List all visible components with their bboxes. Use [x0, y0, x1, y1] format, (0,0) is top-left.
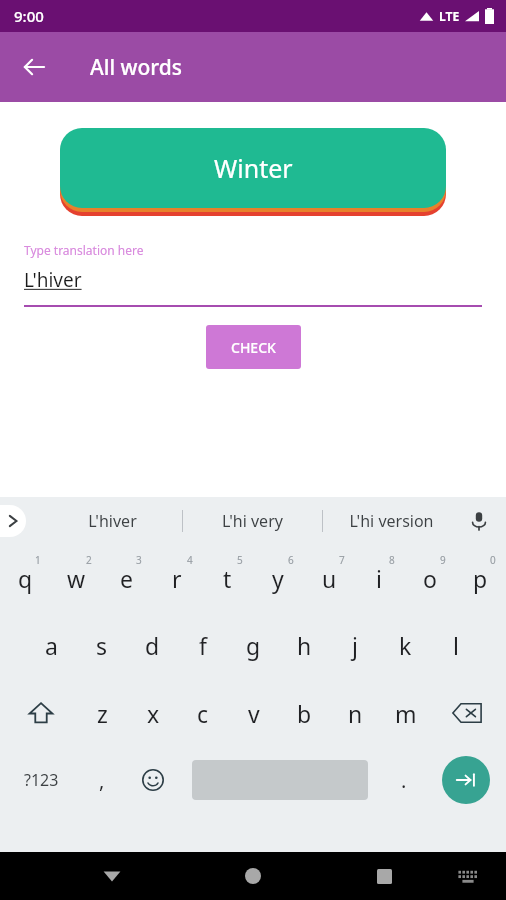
button[interactable]: g — [228, 611, 278, 679]
staticText: a — [45, 630, 58, 661]
button[interactable]: , — [80, 747, 124, 813]
staticText: t — [223, 563, 232, 594]
button[interactable]: Back — [88, 852, 136, 900]
staticText: v — [248, 698, 260, 729]
button[interactable]: s — [77, 611, 127, 679]
button[interactable]: l — [431, 611, 481, 679]
button[interactable]: L'hi version — [331, 497, 451, 545]
button[interactable]: Backspace — [440, 679, 494, 747]
button[interactable]: y — [253, 545, 303, 611]
staticText: c — [197, 698, 209, 729]
staticText: CHECK — [231, 338, 276, 357]
button[interactable]: Voice input — [462, 504, 496, 538]
staticText: All words — [90, 53, 183, 82]
button[interactable]: ?123 — [8, 747, 74, 813]
button[interactable]: e — [101, 545, 151, 611]
button[interactable]: r — [152, 545, 202, 611]
button[interactable]: a — [26, 611, 76, 679]
staticText: ?123 — [24, 769, 59, 791]
staticText: z — [97, 698, 108, 729]
button[interactable]: c — [178, 679, 228, 747]
staticText: L'hi version — [349, 510, 434, 532]
staticText: g — [246, 630, 261, 661]
staticText: LTE — [439, 8, 460, 24]
staticText: k — [399, 630, 412, 661]
staticText: . — [401, 767, 407, 794]
staticText: j — [352, 630, 358, 661]
staticText: 6 — [288, 553, 294, 567]
staticText: b — [297, 698, 312, 729]
staticText: p — [473, 563, 488, 594]
staticText: n — [348, 698, 363, 729]
button[interactable]: b — [279, 679, 329, 747]
staticText: q — [18, 563, 33, 594]
button[interactable]: k — [380, 611, 430, 679]
button[interactable]: Enter — [442, 756, 490, 804]
staticText: 7 — [339, 553, 345, 567]
button[interactable]: CHECK — [206, 325, 301, 369]
button[interactable]: z — [77, 679, 127, 747]
staticText: u — [322, 563, 337, 594]
button[interactable]: h — [279, 611, 329, 679]
staticText: w — [67, 563, 86, 594]
staticText: 9:00 — [14, 6, 44, 26]
button[interactable]: w — [51, 545, 101, 611]
staticText: 8 — [389, 553, 395, 567]
staticText: , — [99, 767, 105, 794]
staticText: 3 — [136, 553, 142, 567]
button[interactable]: d — [127, 611, 177, 679]
button[interactable]: Winter — [60, 128, 446, 208]
staticText: L'hiver — [24, 267, 82, 293]
staticText: m — [395, 698, 417, 729]
staticText: Winter — [214, 151, 293, 185]
button[interactable]: Back — [10, 43, 58, 91]
staticText: L'hi very — [222, 510, 283, 532]
staticText: s — [96, 630, 108, 661]
button[interactable]: v — [229, 679, 279, 747]
staticText: 9 — [440, 553, 446, 567]
staticText: 0 — [490, 553, 496, 567]
staticText: h — [297, 630, 312, 661]
button[interactable]: o — [405, 545, 455, 611]
button[interactable]: n — [330, 679, 380, 747]
staticText: r — [172, 563, 182, 594]
staticText: x — [147, 698, 160, 729]
staticText: L'hiver — [88, 510, 137, 532]
staticText: o — [423, 563, 437, 594]
button[interactable]: Shift — [14, 679, 68, 747]
button[interactable]: L'hiver — [52, 497, 172, 545]
staticText: d — [145, 630, 160, 661]
button[interactable]: f — [178, 611, 228, 679]
staticText: 1 — [35, 553, 41, 567]
staticText: 5 — [237, 553, 243, 567]
button[interactable]: . — [382, 747, 426, 813]
button[interactable]: More suggestions — [0, 505, 26, 537]
button[interactable]: Switch keyboard — [448, 856, 488, 896]
button[interactable]: u — [304, 545, 354, 611]
staticText: e — [120, 563, 133, 594]
button[interactable]: Type translation here — [24, 242, 482, 307]
staticText: 2 — [86, 553, 92, 567]
button[interactable]: x — [128, 679, 178, 747]
button[interactable]: Emoji — [130, 747, 176, 813]
button[interactable]: m — [381, 679, 431, 747]
button[interactable]: L'hi very — [192, 497, 312, 545]
staticText: l — [453, 630, 459, 661]
button[interactable]: i — [354, 545, 404, 611]
staticText: y — [272, 563, 284, 594]
button[interactable]: p — [455, 545, 505, 611]
staticText: i — [376, 563, 382, 594]
button[interactable]: Recents — [360, 852, 408, 900]
button[interactable]: q — [0, 545, 50, 611]
staticText: Type translation here — [24, 242, 144, 258]
staticText: 4 — [187, 553, 193, 567]
button[interactable]: t — [202, 545, 252, 611]
button[interactable]: j — [330, 611, 380, 679]
button[interactable]: Home — [229, 852, 277, 900]
staticText: f — [199, 630, 207, 661]
